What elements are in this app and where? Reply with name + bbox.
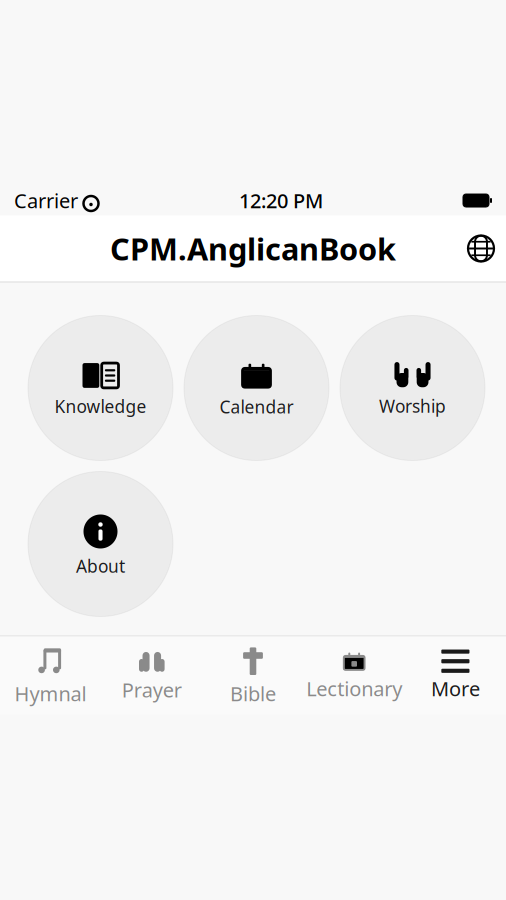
button[interactable]: More	[405, 643, 506, 708]
button[interactable]: Bible	[202, 638, 304, 713]
button[interactable]: Lectionary	[304, 643, 405, 708]
staticText: Hymnal	[15, 680, 87, 707]
staticText: Lectionary	[306, 675, 402, 702]
button[interactable]: Prayer	[101, 642, 202, 709]
button[interactable]: Hymnal	[0, 638, 101, 713]
button[interactable]: About	[28, 471, 173, 616]
staticText: Worship	[379, 394, 446, 417]
staticText: Carrier	[14, 187, 78, 214]
staticText: Bible	[230, 680, 276, 707]
staticText: About	[76, 554, 125, 577]
staticText: CPM.AnglicanBook	[110, 228, 396, 269]
staticText: Knowledge	[54, 395, 146, 418]
button[interactable]: Language	[456, 227, 506, 269]
staticText: Prayer	[122, 676, 182, 703]
staticText: 12:20 PM	[239, 187, 323, 214]
button[interactable]: Worship	[340, 315, 485, 460]
staticText: More	[431, 675, 480, 702]
staticText: Calendar	[219, 395, 293, 418]
button[interactable]: Calendar	[184, 315, 329, 460]
button[interactable]: Knowledge	[28, 315, 173, 460]
